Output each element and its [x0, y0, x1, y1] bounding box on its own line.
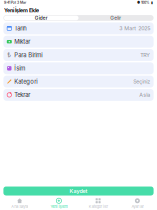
button[interactable]: Kategoriler	[78, 198, 118, 209]
button[interactable]: Kategori	[3, 76, 154, 88]
staticText: Gelir	[110, 15, 121, 21]
button[interactable]: Gider	[4, 16, 78, 20]
staticText: ● 100% ▮	[137, 0, 153, 5]
button[interactable]: Tarih	[3, 22, 154, 34]
staticText: Kaydet	[69, 188, 87, 194]
button[interactable]: İsim	[3, 62, 154, 74]
button[interactable]: Ayarlar	[118, 198, 157, 209]
staticText: Tekrar	[14, 91, 30, 98]
button[interactable]: ₺	[3, 49, 154, 61]
staticText: TRY	[140, 52, 150, 58]
button[interactable]: Gelir	[78, 16, 153, 20]
button[interactable]: Yeni İşlem	[39, 198, 78, 209]
staticText: Kategoriler	[89, 204, 108, 209]
staticText: Kategori	[14, 78, 37, 85]
button[interactable]: Kaydet	[3, 186, 154, 195]
staticText: Gider	[35, 15, 48, 21]
staticText: ₺	[7, 51, 11, 59]
button[interactable]: Tekrar	[3, 89, 154, 101]
staticText: Tarih	[14, 25, 26, 32]
staticText: Ana Sayfa	[11, 204, 28, 209]
staticText: İsim	[14, 65, 25, 72]
staticText: Asla	[139, 92, 150, 98]
staticText: Para Birimi	[14, 51, 42, 59]
staticText: Miktar	[14, 38, 30, 45]
button[interactable]: Miktar	[3, 36, 154, 48]
staticText: Yeni İşlem Ekle	[4, 7, 39, 14]
staticText: 9:41 Pzt 3 Mar	[4, 0, 26, 5]
staticText: Ayarlar	[131, 204, 143, 209]
staticText: 3 Mart 2025	[119, 25, 150, 32]
staticText: Seçiniz	[133, 78, 150, 85]
button[interactable]: Ana Sayfa	[0, 198, 39, 209]
staticText: Yeni İşlem	[50, 204, 67, 209]
